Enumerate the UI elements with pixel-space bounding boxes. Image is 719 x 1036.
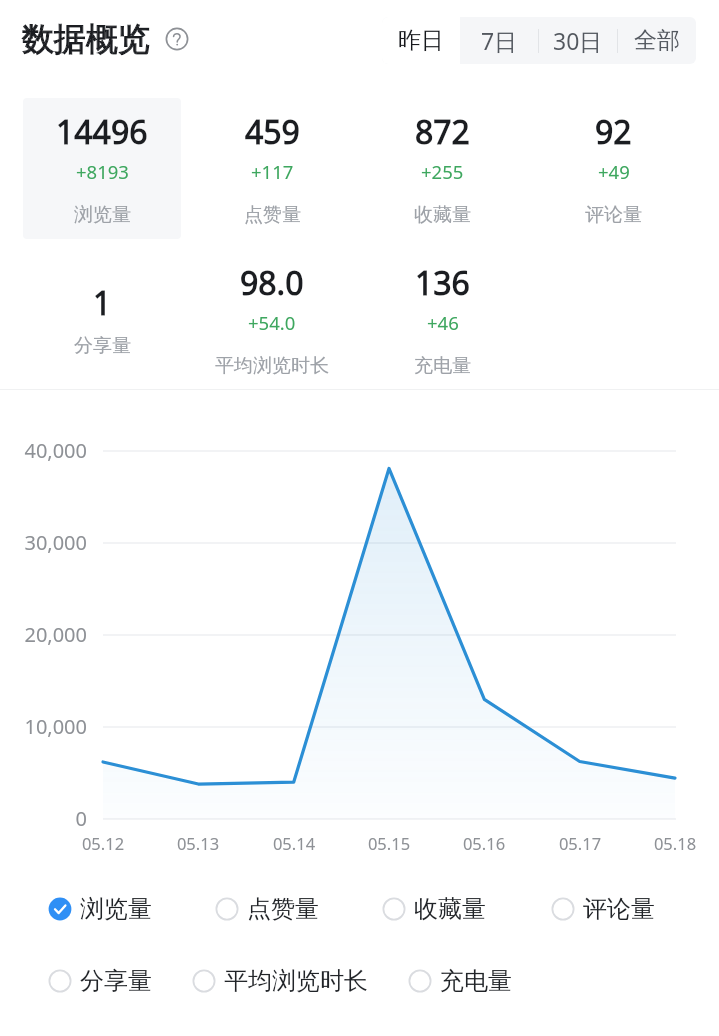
staticText: 充电量 <box>414 354 471 378</box>
staticText: 14496 <box>56 110 148 154</box>
button[interactable]: 30日 <box>538 17 617 64</box>
staticText: 136 <box>415 261 470 305</box>
staticText: 10,000 <box>0 713 87 740</box>
staticText: 分享量 <box>80 966 152 996</box>
staticText: 数据概览 <box>22 19 150 59</box>
button[interactable]: 全部 <box>617 17 696 64</box>
staticText: 收藏量 <box>414 894 486 924</box>
staticText: +49 <box>598 159 630 184</box>
staticText: 05.17 <box>535 832 625 854</box>
button[interactable]: 数据概览 <box>22 17 192 61</box>
staticText: 05.14 <box>249 832 339 854</box>
staticText: 05.18 <box>630 832 719 854</box>
staticText: 1 <box>93 281 112 325</box>
button[interactable]: 459 <box>193 98 351 239</box>
button[interactable]: 浏览量 <box>48 894 215 924</box>
staticText: 浏览量 <box>80 894 152 924</box>
staticText: 评论量 <box>583 894 655 924</box>
staticText: 98.0 <box>240 261 304 305</box>
staticText: 05.13 <box>153 832 243 854</box>
button[interactable]: 收藏量 <box>382 894 551 924</box>
button[interactable]: 分享量 <box>48 966 192 996</box>
staticText: +46 <box>427 310 459 335</box>
staticText: 7日 <box>481 25 518 56</box>
button[interactable]: 136 <box>363 249 522 390</box>
staticText: 92 <box>595 110 632 154</box>
staticText: 20,000 <box>0 621 87 648</box>
button[interactable]: 872 <box>363 98 522 239</box>
staticText: 分享量 <box>74 334 131 358</box>
staticText: 充电量 <box>440 966 512 996</box>
staticText: +117 <box>251 159 294 184</box>
staticText: 30日 <box>553 25 603 56</box>
staticText: 30,000 <box>0 529 87 556</box>
staticText: 数据概览 <box>22 19 150 59</box>
staticText: +8193 <box>76 159 129 184</box>
staticText: 0 <box>0 805 87 832</box>
staticText: 05.16 <box>439 832 529 854</box>
staticText: +255 <box>421 159 464 184</box>
staticText: 评论量 <box>585 203 642 227</box>
button[interactable]: 充电量 <box>408 966 548 996</box>
other: Help <box>162 24 192 54</box>
staticText: +54.0 <box>248 310 296 335</box>
button[interactable]: 14496 <box>23 98 181 239</box>
staticText: 平均浏览时长 <box>224 966 368 996</box>
button[interactable]: 98.0 <box>193 249 351 390</box>
button[interactable]: 1 <box>23 249 181 390</box>
staticText: 浏览量 <box>74 203 131 227</box>
staticText: 平均浏览时长 <box>215 354 329 378</box>
button[interactable]: 平均浏览时长 <box>192 966 408 996</box>
staticText: 05.15 <box>344 832 434 854</box>
staticText: 872 <box>415 110 470 154</box>
staticText: 40,000 <box>0 437 87 464</box>
staticText: 全部 <box>634 26 680 55</box>
button[interactable]: 评论量 <box>551 894 691 924</box>
staticText: 459 <box>245 110 300 154</box>
button[interactable]: 92 <box>534 98 693 239</box>
staticText: 收藏量 <box>414 203 471 227</box>
button[interactable]: 7日 <box>460 17 538 64</box>
button[interactable]: 点赞量 <box>215 894 382 924</box>
staticText: 点赞量 <box>247 894 319 924</box>
button[interactable]: 昨日 <box>382 17 460 64</box>
staticText: 点赞量 <box>244 203 301 227</box>
staticText: 05.12 <box>58 832 148 854</box>
staticText: 昨日 <box>398 26 444 55</box>
